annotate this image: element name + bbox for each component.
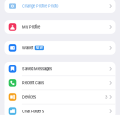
staticText: Saved Messages	[22, 66, 52, 71]
button[interactable]: Chat Folders	[4, 104, 115, 118]
staticText: Devices	[22, 95, 36, 99]
staticText: Wallet	[22, 45, 33, 50]
staticText: My Profile	[22, 25, 40, 29]
button[interactable]: Saved Messages	[4, 62, 115, 76]
button[interactable]: Recent Calls	[4, 76, 115, 90]
button[interactable]: My Profile	[4, 20, 115, 34]
staticText: Recent Calls	[22, 80, 44, 85]
button[interactable]: Change Profile Photo	[4, 0, 115, 13]
staticText: Chat Folders	[22, 109, 44, 113]
button[interactable]: Devices	[4, 90, 115, 104]
staticText: 3	[105, 95, 107, 99]
staticText: NEW	[36, 46, 43, 50]
button[interactable]: Wallet	[4, 41, 115, 55]
staticText: Change Profile Photo	[22, 4, 58, 8]
